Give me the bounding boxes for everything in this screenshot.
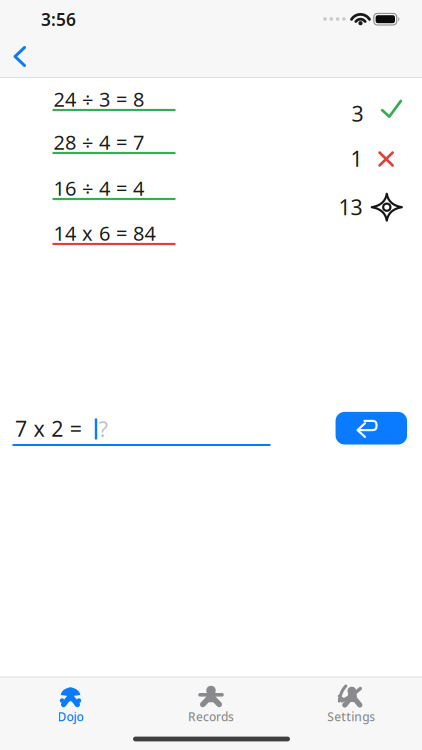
button[interactable]: Records xyxy=(141,677,281,735)
button[interactable]: 7 x 2 = xyxy=(0,396,283,460)
staticText: 24 ÷ 3 = 8 xyxy=(53,86,144,112)
staticText: 13 xyxy=(338,193,362,221)
button[interactable]: Settings xyxy=(281,677,421,735)
staticText: 28 ÷ 4 = 7 xyxy=(53,129,144,155)
staticText: 1 xyxy=(350,144,362,173)
staticText: Records xyxy=(188,708,234,724)
staticText: 14 x 6 = 84 xyxy=(53,220,155,246)
staticText: 3:56 xyxy=(41,8,76,31)
button[interactable]: Dojo xyxy=(0,677,140,735)
staticText: Dojo xyxy=(57,708,83,724)
staticText: 16 ÷ 4 = 4 xyxy=(53,175,144,201)
staticText: 7 x 2 = xyxy=(15,414,88,443)
staticText: Settings xyxy=(327,708,375,724)
button[interactable] xyxy=(336,412,407,444)
button[interactable] xyxy=(2,35,46,79)
staticText: 3 xyxy=(351,99,363,128)
staticText: ? xyxy=(99,415,108,443)
